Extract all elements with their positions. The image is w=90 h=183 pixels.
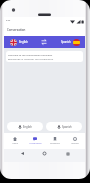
staticText: Welcome to the conversation translator <box>8 53 53 56</box>
staticText: Bookmark <box>50 142 60 145</box>
button[interactable]: Back <box>18 149 27 158</box>
button[interactable]: Settings <box>65 133 85 149</box>
button[interactable]: Recents <box>63 149 72 158</box>
staticText: Settings <box>71 142 79 145</box>
button[interactable]: English <box>4 36 38 48</box>
staticText: English <box>19 40 28 44</box>
button[interactable]: English <box>7 122 43 131</box>
button[interactable]: Swap languages <box>38 36 50 48</box>
staticText: Conversation <box>7 28 26 32</box>
button[interactable]: Home <box>40 149 49 158</box>
button[interactable]: Bookmark <box>45 133 65 149</box>
staticText: Bienvenido al traductor de conversación <box>8 57 54 60</box>
staticText: 9:30 <box>6 19 11 22</box>
staticText: Spanish <box>62 125 72 129</box>
staticText: Home <box>12 142 18 145</box>
button[interactable]: Conversation <box>25 133 45 149</box>
button[interactable]: Welcome to the conversation translator <box>6 51 83 62</box>
button[interactable]: Spanish <box>50 36 85 48</box>
staticText: Spanish <box>61 40 71 44</box>
button[interactable]: Home <box>4 133 25 149</box>
staticText: Conversation <box>29 142 42 145</box>
staticText: English <box>23 125 32 129</box>
button[interactable]: Spanish <box>46 122 82 131</box>
